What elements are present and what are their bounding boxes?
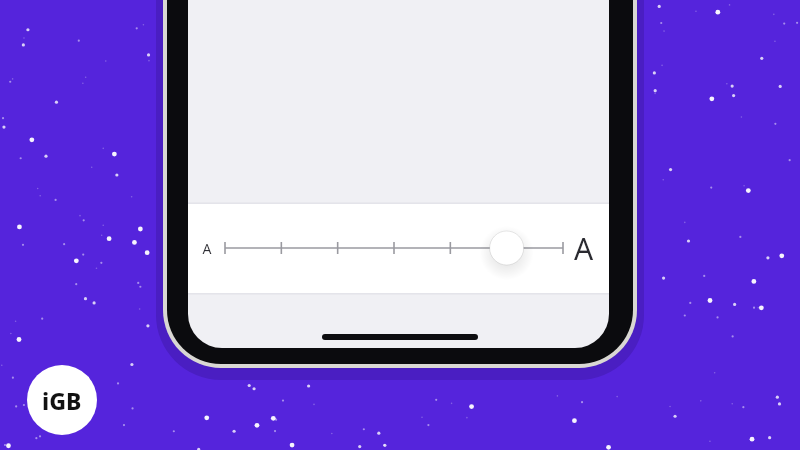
button[interactable]: Home indicator bbox=[322, 330, 478, 344]
button[interactable]: iGeeksBlog logo bbox=[27, 365, 97, 435]
button[interactable]: Text size slider bbox=[188, 204, 609, 293]
